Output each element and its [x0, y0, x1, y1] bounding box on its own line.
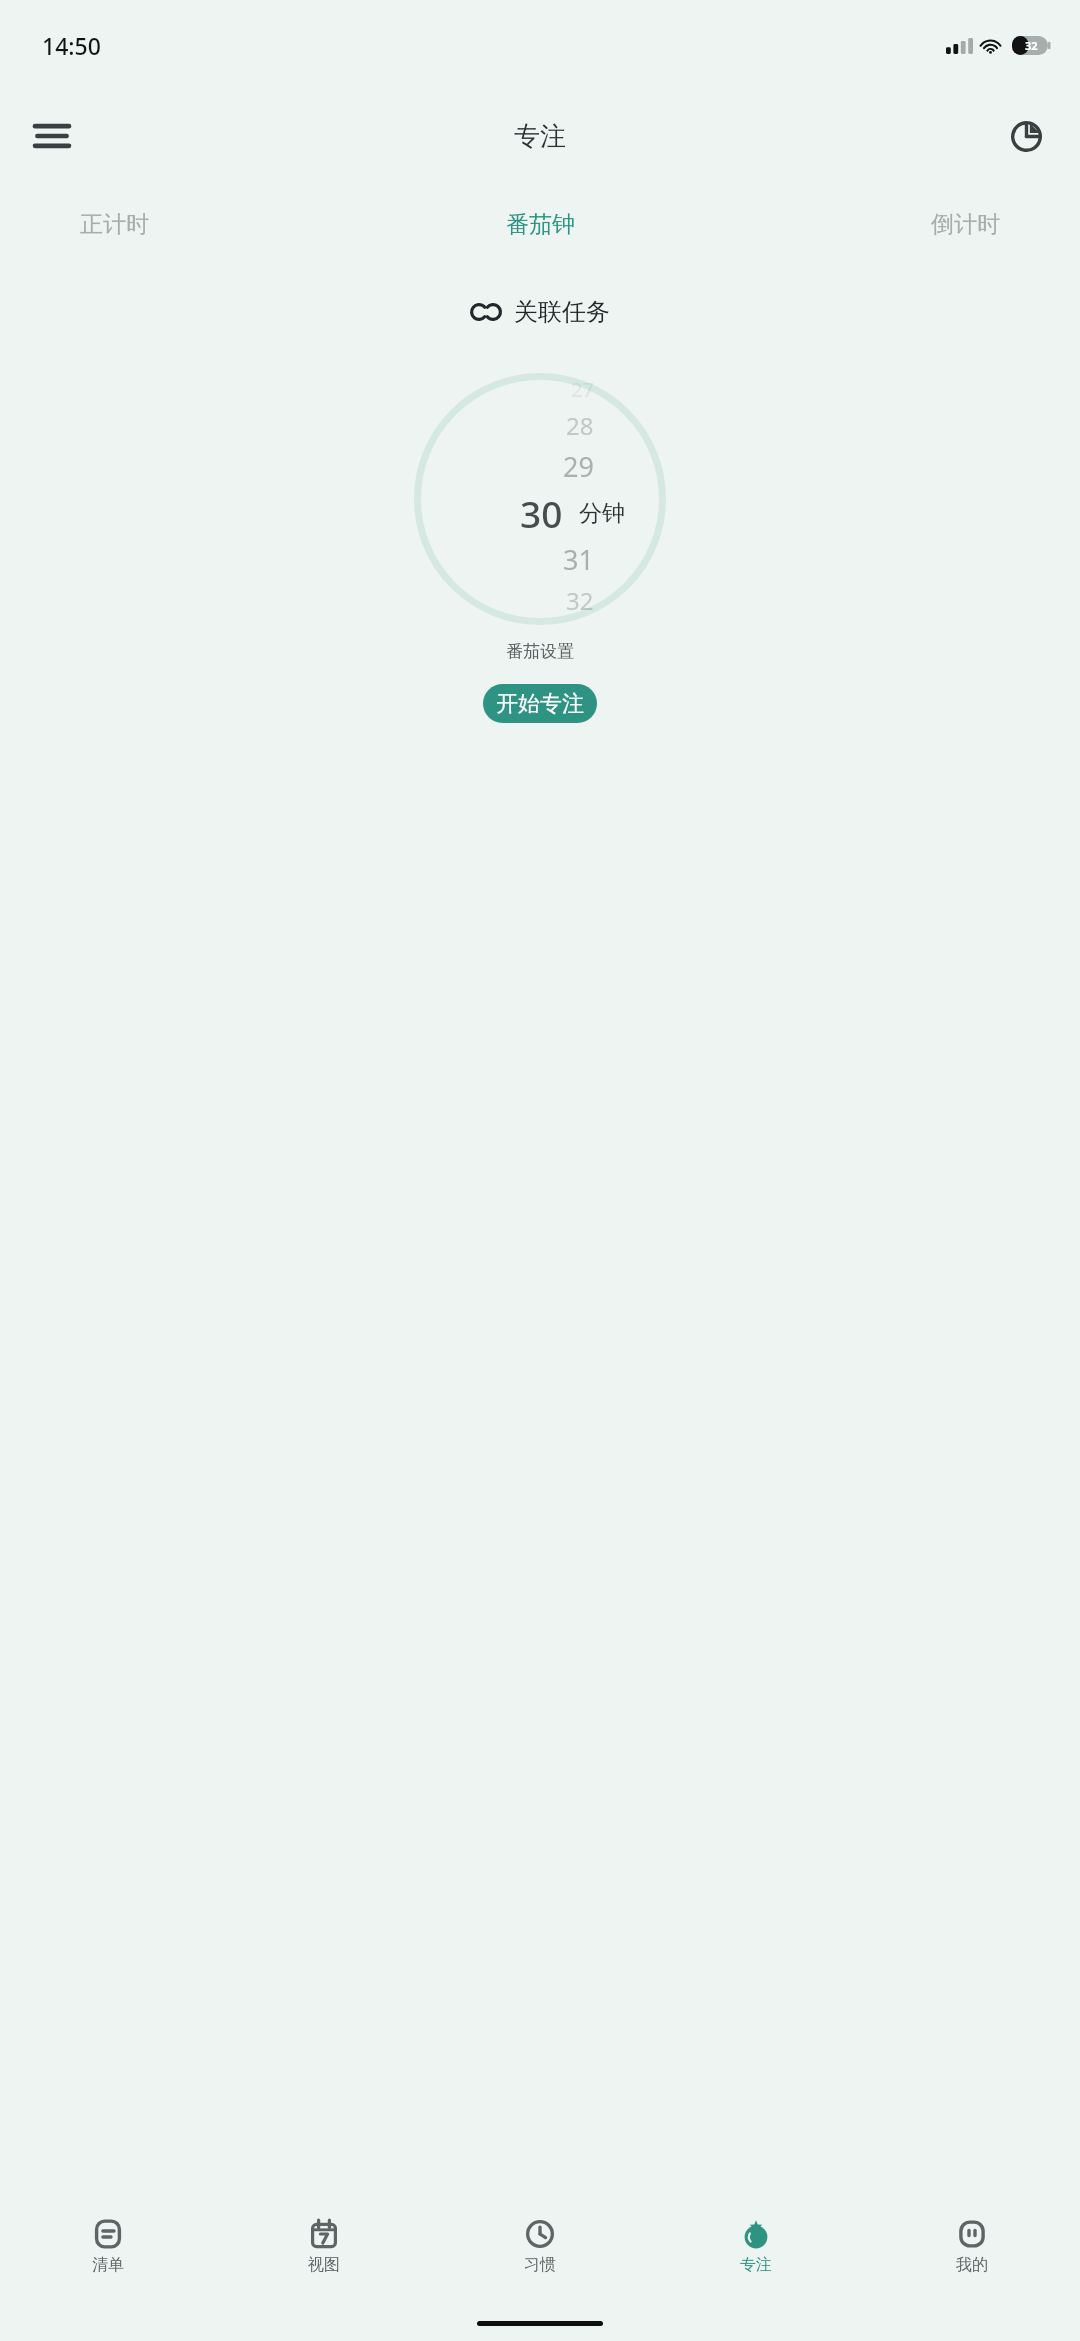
staticText: 31 [563, 541, 594, 578]
button[interactable]: 番茄钟 [496, 204, 585, 245]
staticText: 清单 [92, 2255, 124, 2275]
button[interactable]: 清单 [0, 2209, 216, 2305]
button[interactable]: 专注 [648, 2209, 864, 2305]
staticText: 我的 [956, 2255, 988, 2275]
button[interactable]: 正计时 [70, 204, 159, 245]
button[interactable]: 倒计时 [921, 204, 1010, 245]
staticText: 分钟 [579, 499, 625, 528]
staticText: 专注 [740, 2255, 772, 2275]
button[interactable]: 我的 [864, 2209, 1080, 2305]
staticText: 29 [563, 448, 594, 485]
staticText: 正计时 [80, 210, 149, 239]
button[interactable]: 番茄设置 [0, 641, 1080, 662]
staticText: 14:50 [42, 30, 101, 61]
staticText: 27 [571, 376, 594, 403]
button[interactable]: 习惯 [432, 2209, 648, 2305]
staticText: 开始专注 [496, 690, 584, 718]
staticText: 30 [520, 488, 563, 538]
button[interactable]: 关联任务 [458, 289, 622, 335]
button[interactable]: 视图 [216, 2209, 432, 2305]
button[interactable]: Menu [24, 108, 80, 164]
button[interactable]: 27 [0, 373, 1080, 625]
staticText: 32 [566, 584, 594, 617]
staticText: 关联任务 [514, 297, 610, 327]
staticText: 32 [1025, 38, 1038, 53]
staticText: 倒计时 [931, 210, 1000, 239]
button[interactable]: 开始专注 [483, 684, 597, 723]
staticText: 28 [566, 409, 594, 442]
staticText: 专注 [514, 120, 566, 153]
button[interactable]: Statistics [998, 108, 1054, 164]
staticText: 视图 [308, 2255, 340, 2275]
staticText: 习惯 [524, 2255, 556, 2275]
staticText: 番茄钟 [506, 210, 575, 239]
